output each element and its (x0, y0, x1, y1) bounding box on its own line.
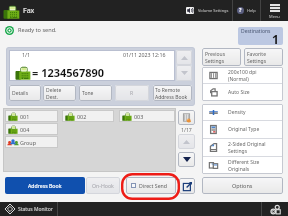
staticText: 003 (134, 113, 144, 120)
button[interactable]: Volume Settings (183, 0, 232, 21)
button[interactable]: Original Type (202, 121, 283, 138)
button[interactable]: Details (9, 85, 41, 101)
staticText: Status Monitor (18, 206, 53, 213)
button[interactable]: Edit destination (179, 178, 195, 194)
button[interactable]: 003 (119, 110, 175, 122)
staticText: R (130, 90, 134, 97)
button[interactable]: Previous Settings (202, 48, 241, 66)
button[interactable]: Device settings (262, 202, 288, 216)
staticText: Delete Dest. (46, 87, 62, 100)
button[interactable] (176, 65, 192, 81)
button[interactable]: Status Monitor (0, 202, 57, 216)
button[interactable]: R (115, 85, 149, 101)
button[interactable] (176, 50, 192, 65)
staticText: Menu (269, 14, 280, 19)
button[interactable]: ? (233, 0, 260, 21)
staticText: 200x100 dpi (Normal) (228, 69, 257, 82)
staticText: 001 (20, 113, 30, 120)
button[interactable]: On-Hook (86, 177, 120, 194)
staticText: Different Size Originals (228, 159, 260, 172)
button[interactable]: Density (202, 104, 283, 120)
staticText: Details (12, 90, 29, 97)
staticText: Address Book (28, 182, 62, 189)
button[interactable]: Different Size Originals (202, 157, 283, 174)
button[interactable]: Auto Size (202, 84, 283, 101)
button[interactable]: 004 (5, 123, 58, 135)
button[interactable]: Group (5, 136, 58, 148)
button[interactable]: 2-Sided Original Settings (202, 139, 283, 156)
staticText: Auto Size (228, 89, 250, 96)
staticText: Previous Settings (205, 51, 226, 64)
staticText: = 1234567890 (32, 65, 105, 80)
button[interactable]: Address Book (5, 177, 85, 194)
staticText: 1/17 (181, 126, 192, 133)
button[interactable]: 200x100 dpi (Normal) (202, 67, 283, 83)
button[interactable]: To Remote Address Book (153, 85, 192, 101)
staticText: Destinations (241, 28, 271, 35)
staticText: To Remote Address Book (155, 87, 188, 100)
staticText: 2-Sided Original Settings (228, 141, 266, 154)
button[interactable]: Scroll up (178, 134, 195, 149)
staticText: Density (228, 109, 246, 116)
other: Index search (182, 113, 192, 123)
button[interactable]: Scroll down (178, 152, 195, 167)
button[interactable]: Tone (79, 85, 112, 101)
staticText: Ready to send. (18, 26, 57, 34)
other: Edit destination (183, 182, 192, 191)
button[interactable]: Direct Send (126, 177, 176, 194)
staticText: 002 (77, 113, 87, 120)
staticText: ? (239, 7, 242, 14)
staticText: Fax (23, 6, 35, 16)
staticText: Original Type (228, 126, 260, 133)
staticText: 1 (272, 31, 279, 45)
staticText: 1/1 (22, 51, 31, 58)
button[interactable]: Destinations (238, 27, 283, 45)
button[interactable]: Delete Dest. (43, 85, 76, 101)
staticText: Favorite Settings (247, 51, 267, 64)
staticText: Options (232, 182, 253, 189)
staticText: Tone (82, 90, 94, 97)
button[interactable]: Menu (261, 0, 288, 21)
button[interactable]: 001 (5, 110, 58, 122)
button[interactable]: 002 (62, 110, 114, 122)
button[interactable]: Index search (178, 110, 195, 125)
button[interactable]: Favorite Settings (244, 48, 283, 66)
staticText: On-Hook (92, 182, 114, 189)
staticText: 004 (20, 126, 30, 133)
button[interactable]: Options (202, 177, 283, 194)
staticText: Volume Settings (198, 8, 229, 13)
staticText: Group (20, 139, 36, 146)
staticText: Direct Send (139, 182, 167, 189)
staticText: 01/11 2023 12:16 (123, 51, 166, 58)
staticText: Help (247, 8, 256, 13)
